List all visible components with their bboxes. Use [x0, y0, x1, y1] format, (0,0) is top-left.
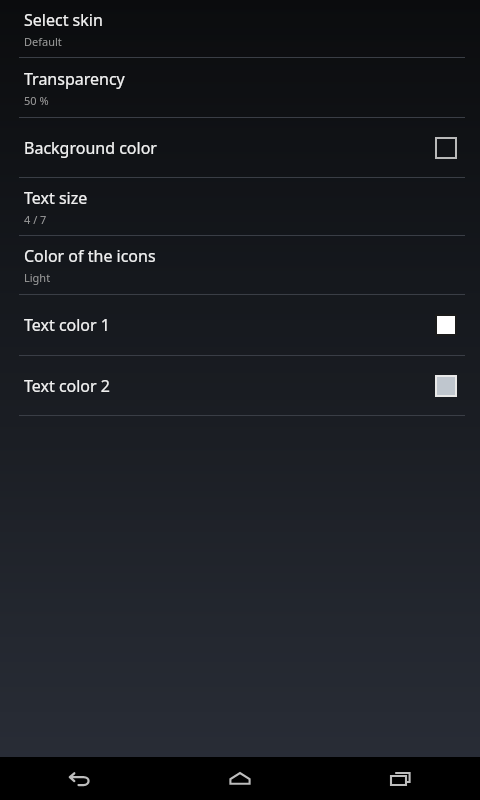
button[interactable]: Transparency: [0, 58, 480, 117]
staticText: Text color 1: [24, 314, 110, 336]
button[interactable]: Home: [160, 757, 320, 800]
staticText: Transparency: [24, 68, 125, 90]
staticText: Text size: [24, 187, 88, 209]
staticText: Default: [24, 34, 62, 49]
staticText: Color of the icons: [24, 245, 156, 267]
button[interactable]: Color of the icons: [0, 236, 480, 294]
button[interactable]: Background color: [0, 118, 480, 177]
button[interactable]: Text size: [0, 178, 480, 235]
staticText: Background color: [24, 137, 157, 159]
staticText: 4 / 7: [24, 212, 47, 227]
staticText: Select skin: [24, 9, 103, 31]
staticText: Text color 2: [24, 375, 110, 397]
button[interactable]: Recents: [320, 757, 480, 800]
button[interactable]: Back: [0, 757, 160, 800]
button[interactable]: Text color 1: [0, 295, 480, 355]
staticText: 50 %: [24, 93, 49, 108]
staticText: Light: [24, 270, 51, 285]
button[interactable]: Select skin: [0, 0, 480, 57]
button[interactable]: Text color 2: [0, 356, 480, 415]
